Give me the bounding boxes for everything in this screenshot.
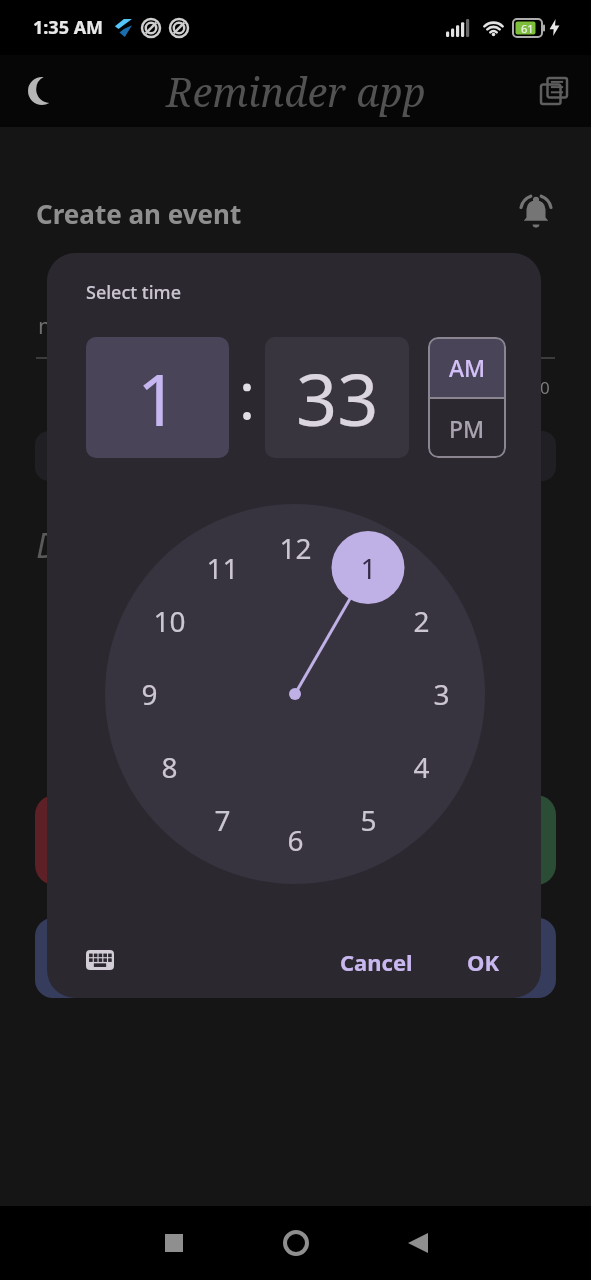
button[interactable]: 33 [265, 337, 409, 458]
button[interactable] [35, 918, 556, 998]
button[interactable] [150, 1219, 198, 1267]
button[interactable]: 1 [86, 337, 229, 458]
staticText: 12 [279, 529, 312, 567]
staticText: AM [449, 352, 486, 383]
staticText: 4 [413, 748, 430, 786]
staticText: 33 [296, 349, 379, 447]
staticText: 3 [433, 675, 450, 713]
staticText: Reminder app [166, 64, 426, 118]
button[interactable] [35, 795, 285, 885]
staticText: 9 [141, 675, 158, 713]
staticText: Select time [86, 280, 181, 305]
button[interactable] [519, 195, 553, 229]
button[interactable]: Cancel [340, 947, 413, 977]
staticText: PM [449, 413, 485, 444]
staticText: 6 [287, 821, 304, 859]
staticText: 10 [153, 602, 186, 640]
staticText: D [36, 522, 59, 568]
staticText: 1 [137, 349, 179, 447]
staticText: Create an event [36, 196, 242, 231]
staticText: 1:35 AM [33, 15, 104, 40]
staticText: 0 [540, 376, 550, 399]
staticText: 7 [214, 801, 231, 839]
staticText: 5 [360, 801, 377, 839]
staticText: 8 [161, 748, 178, 786]
staticText: 11 [206, 549, 239, 587]
button[interactable]: PM [428, 398, 506, 458]
button[interactable] [394, 1219, 442, 1267]
staticText: 2 [413, 602, 430, 640]
button[interactable] [306, 795, 556, 885]
button[interactable]: OK [467, 947, 500, 977]
button[interactable] [28, 77, 56, 105]
button[interactable]: AM [428, 337, 506, 397]
button[interactable] [541, 78, 567, 104]
staticText: 61 [521, 21, 534, 36]
button[interactable] [272, 1219, 320, 1267]
staticText: 1 [360, 549, 377, 587]
button[interactable] [86, 946, 114, 974]
staticText: m [38, 310, 59, 340]
